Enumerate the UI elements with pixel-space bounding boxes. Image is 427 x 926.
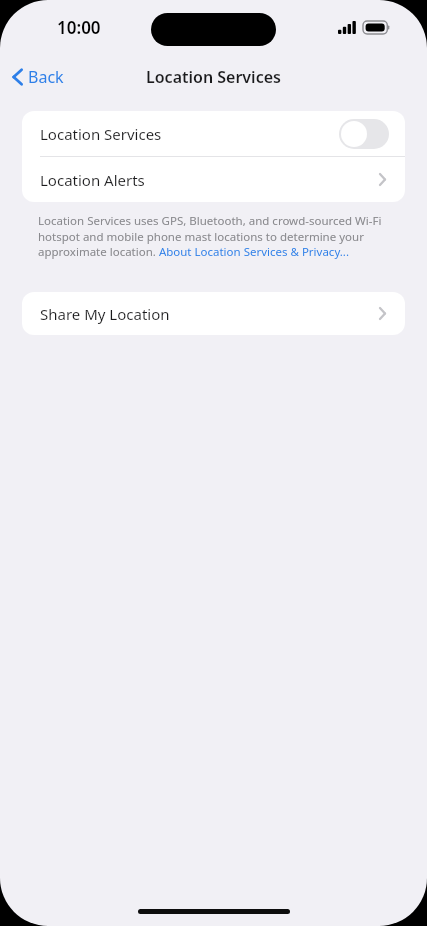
staticText: Location Alerts — [40, 170, 145, 190]
button[interactable]: Location Alerts — [22, 157, 405, 202]
button[interactable]: Location Services toggle, off — [339, 119, 389, 149]
staticText: Location Services — [146, 66, 281, 88]
staticText: Share My Location — [40, 304, 170, 324]
staticText: Location Services — [40, 124, 162, 144]
button[interactable]: Back — [0, 62, 74, 92]
button[interactable]: Location Services — [22, 111, 405, 156]
staticText: Location Services uses GPS, Bluetooth, a… — [38, 213, 395, 259]
staticText: 10:00 — [57, 16, 101, 39]
staticText: Back — [28, 66, 64, 88]
button[interactable]: Share My Location — [22, 292, 405, 335]
